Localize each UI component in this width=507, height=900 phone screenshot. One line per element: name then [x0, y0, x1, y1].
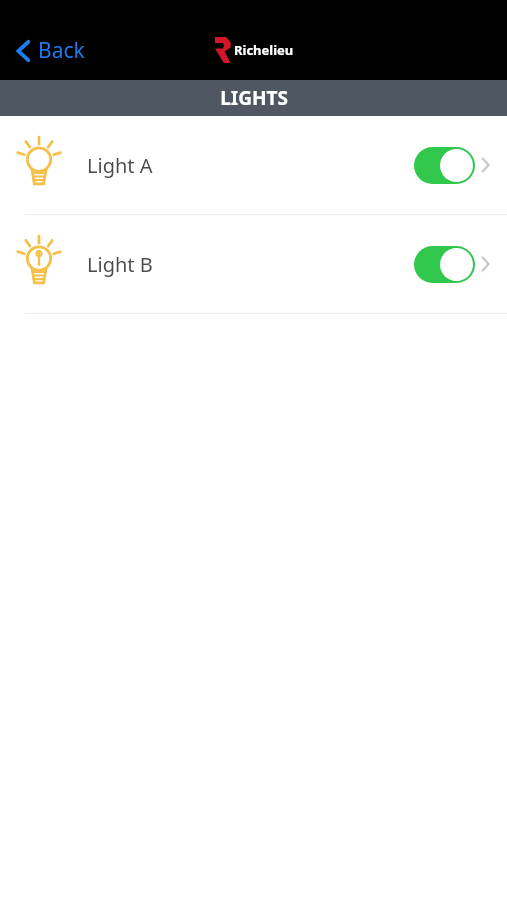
other: Open Light A details	[481, 157, 490, 173]
other: Open Light B details	[481, 256, 490, 272]
staticText: Back	[38, 36, 85, 65]
button[interactable]: Toggle light on or off	[414, 246, 475, 283]
button[interactable]: Light A	[0, 116, 507, 214]
staticText: Richelieu	[234, 41, 294, 59]
button[interactable]: Toggle light on or off	[414, 147, 475, 184]
staticText: LIGHTS	[220, 85, 288, 111]
staticText: Light A	[87, 152, 153, 179]
button[interactable]: Light B	[0, 215, 507, 313]
button[interactable]: Back	[0, 30, 99, 71]
staticText: Light B	[87, 251, 153, 278]
